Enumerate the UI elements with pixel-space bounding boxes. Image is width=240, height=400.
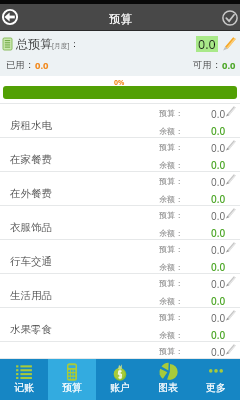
button[interactable]: 在外餐费 — [0, 172, 240, 206]
button[interactable]: 生活用品 — [0, 274, 240, 308]
staticText: 余额： — [159, 194, 183, 204]
button[interactable]: 更多 — [192, 359, 240, 400]
staticText: ： — [70, 38, 79, 49]
staticText: 余额： — [159, 296, 183, 306]
staticText: 余额： — [159, 126, 183, 136]
staticText: 水果零食 — [10, 323, 52, 336]
staticText: 余额： — [159, 160, 183, 170]
button[interactable]: Edit budget — [225, 106, 236, 117]
staticText: 0.0 — [35, 59, 49, 72]
staticText: 0.0 — [198, 36, 216, 52]
staticText: 0.0 — [211, 107, 226, 121]
staticText: 0.0 — [211, 294, 226, 308]
staticText: 在外餐费 — [10, 187, 52, 200]
button[interactable]: Edit budget — [225, 140, 236, 151]
staticText: 预算： — [159, 176, 183, 186]
staticText: 0% — [114, 78, 125, 88]
staticText: 0.0 — [211, 209, 226, 223]
staticText: 行车交通 — [10, 255, 52, 268]
button[interactable]: Confirm — [221, 9, 239, 27]
staticText: 图表 — [158, 381, 178, 394]
button[interactable]: 其他支出 — [0, 342, 240, 359]
staticText: 可用： — [193, 59, 222, 71]
staticText: 总预算 — [16, 36, 52, 51]
button[interactable]: Edit budget — [225, 242, 236, 253]
button[interactable]: Edit budget — [225, 344, 236, 355]
staticText: 预算 — [62, 381, 82, 394]
staticText: 衣服饰品 — [10, 221, 52, 234]
button[interactable]: 记账 — [0, 359, 48, 400]
staticText: 生活用品 — [10, 289, 52, 302]
button[interactable]: 图表 — [144, 359, 192, 400]
staticText: 余额： — [159, 364, 183, 374]
staticText: 预算： — [159, 312, 183, 322]
staticText: 0.0 — [211, 158, 226, 172]
staticText: 预算： — [159, 244, 183, 254]
staticText: 已用： — [6, 59, 35, 71]
staticText: 0.0 — [222, 59, 236, 72]
button[interactable]: 在家餐费 — [0, 138, 240, 172]
staticText: 0.0 — [211, 243, 226, 257]
staticText: 0.0 — [211, 277, 226, 291]
button[interactable]: Back — [1, 8, 19, 26]
staticText: 预算： — [159, 278, 183, 288]
button[interactable]: 账户 — [96, 359, 144, 400]
button[interactable]: 0.0 — [198, 36, 216, 52]
staticText: 0.0 — [211, 175, 226, 189]
button[interactable]: 衣服饰品 — [0, 206, 240, 240]
staticText: 0.0 — [211, 328, 226, 342]
button[interactable]: Edit budget — [225, 310, 236, 321]
staticText: 账户 — [110, 381, 130, 394]
staticText: 0.0 — [211, 345, 226, 359]
staticText: 0.0 — [211, 226, 226, 240]
staticText: 预算： — [159, 346, 183, 356]
staticText: 余额： — [159, 228, 183, 238]
staticText: [月度] — [52, 41, 70, 50]
staticText: 预算： — [159, 108, 183, 118]
staticText: 0.0 — [211, 141, 226, 155]
staticText: 记账 — [14, 381, 34, 394]
button[interactable]: Edit budget — [225, 208, 236, 219]
staticText: 预算： — [159, 210, 183, 220]
button[interactable]: Edit budget — [225, 174, 236, 185]
staticText: 0.0 — [211, 192, 226, 206]
staticText: 0.0 — [211, 260, 226, 274]
staticText: 0.0 — [211, 311, 226, 325]
staticText: 更多 — [206, 381, 226, 394]
staticText: 房租水电 — [10, 119, 52, 132]
button[interactable]: 行车交通 — [0, 240, 240, 274]
staticText: 在家餐费 — [10, 153, 52, 166]
staticText: 其他支出 — [10, 357, 52, 370]
staticText: 预算 — [109, 12, 132, 26]
button[interactable]: 房租水电 — [0, 104, 240, 138]
staticText: 预算： — [159, 142, 183, 152]
button[interactable]: Edit budget — [225, 276, 236, 287]
button[interactable]: Edit total budget — [221, 36, 236, 51]
button[interactable]: 预算 — [48, 359, 96, 400]
staticText: 0.0 — [211, 124, 226, 138]
staticText: 0.0 — [211, 362, 226, 376]
staticText: 余额： — [159, 262, 183, 272]
staticText: 余额： — [159, 330, 183, 340]
button[interactable]: 水果零食 — [0, 308, 240, 342]
